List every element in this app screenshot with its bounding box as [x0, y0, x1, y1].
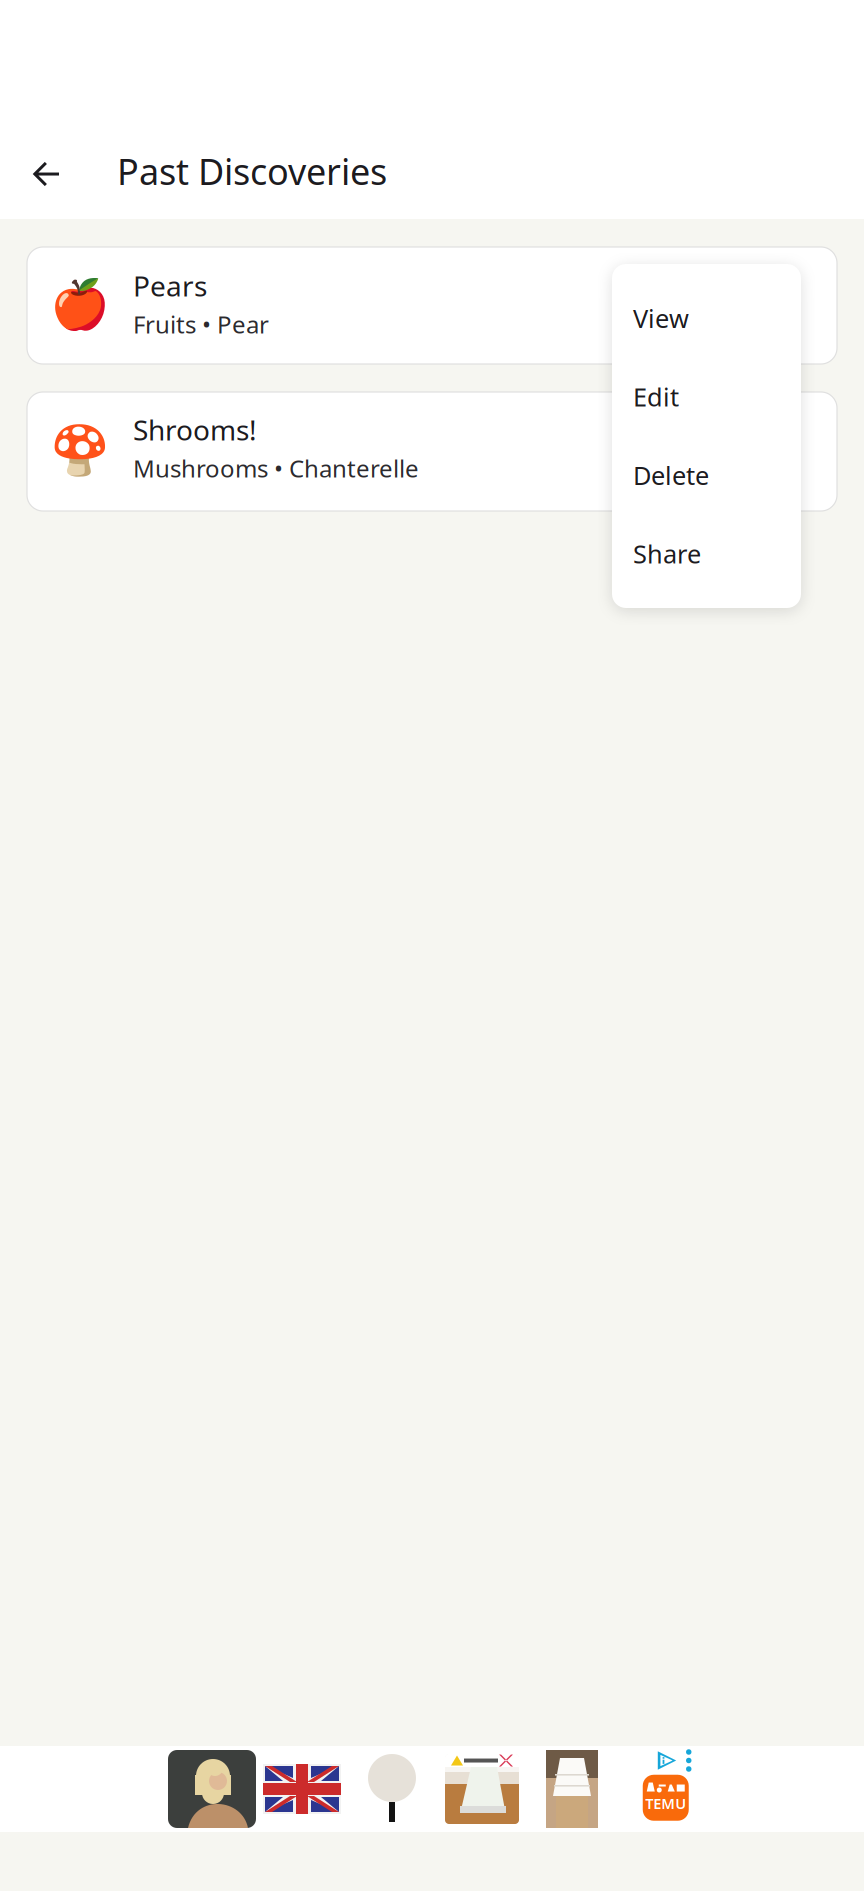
- button[interactable]: Edit: [612, 357, 801, 436]
- staticText: 🍎: [50, 277, 110, 332]
- button[interactable]: 🍎: [27, 247, 837, 364]
- staticText: Pears: [133, 267, 207, 304]
- staticText: Past Discoveries: [117, 147, 387, 195]
- staticText: Shrooms!: [133, 411, 257, 448]
- staticText: Share: [633, 537, 701, 570]
- button[interactable]: Advertisement: [0, 1746, 864, 1832]
- button[interactable]: Delete: [612, 436, 801, 514]
- staticText: TEMU: [645, 1793, 686, 1813]
- staticText: View: [633, 301, 689, 335]
- staticText: Edit: [633, 380, 679, 413]
- staticText: Fruits • Pear: [133, 308, 269, 340]
- button[interactable]: View: [612, 279, 801, 357]
- button[interactable]: 🍄: [27, 392, 837, 511]
- staticText: 🍄: [50, 423, 110, 478]
- staticText: Mushrooms • Chanterelle: [133, 452, 419, 484]
- button[interactable]: Share: [612, 514, 801, 593]
- button[interactable]: Back: [10, 138, 82, 210]
- staticText: Delete: [633, 458, 709, 492]
